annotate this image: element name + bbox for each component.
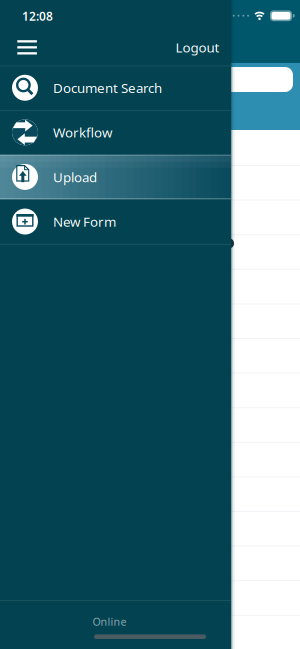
staticText: Online bbox=[92, 614, 126, 629]
staticText: Document Search bbox=[53, 79, 162, 97]
staticText: Logout bbox=[175, 38, 219, 56]
staticText: Workflow bbox=[53, 123, 112, 141]
staticText: 12:08 bbox=[22, 8, 53, 24]
staticText: New Form bbox=[53, 213, 116, 230]
staticText: Upload bbox=[53, 168, 97, 186]
